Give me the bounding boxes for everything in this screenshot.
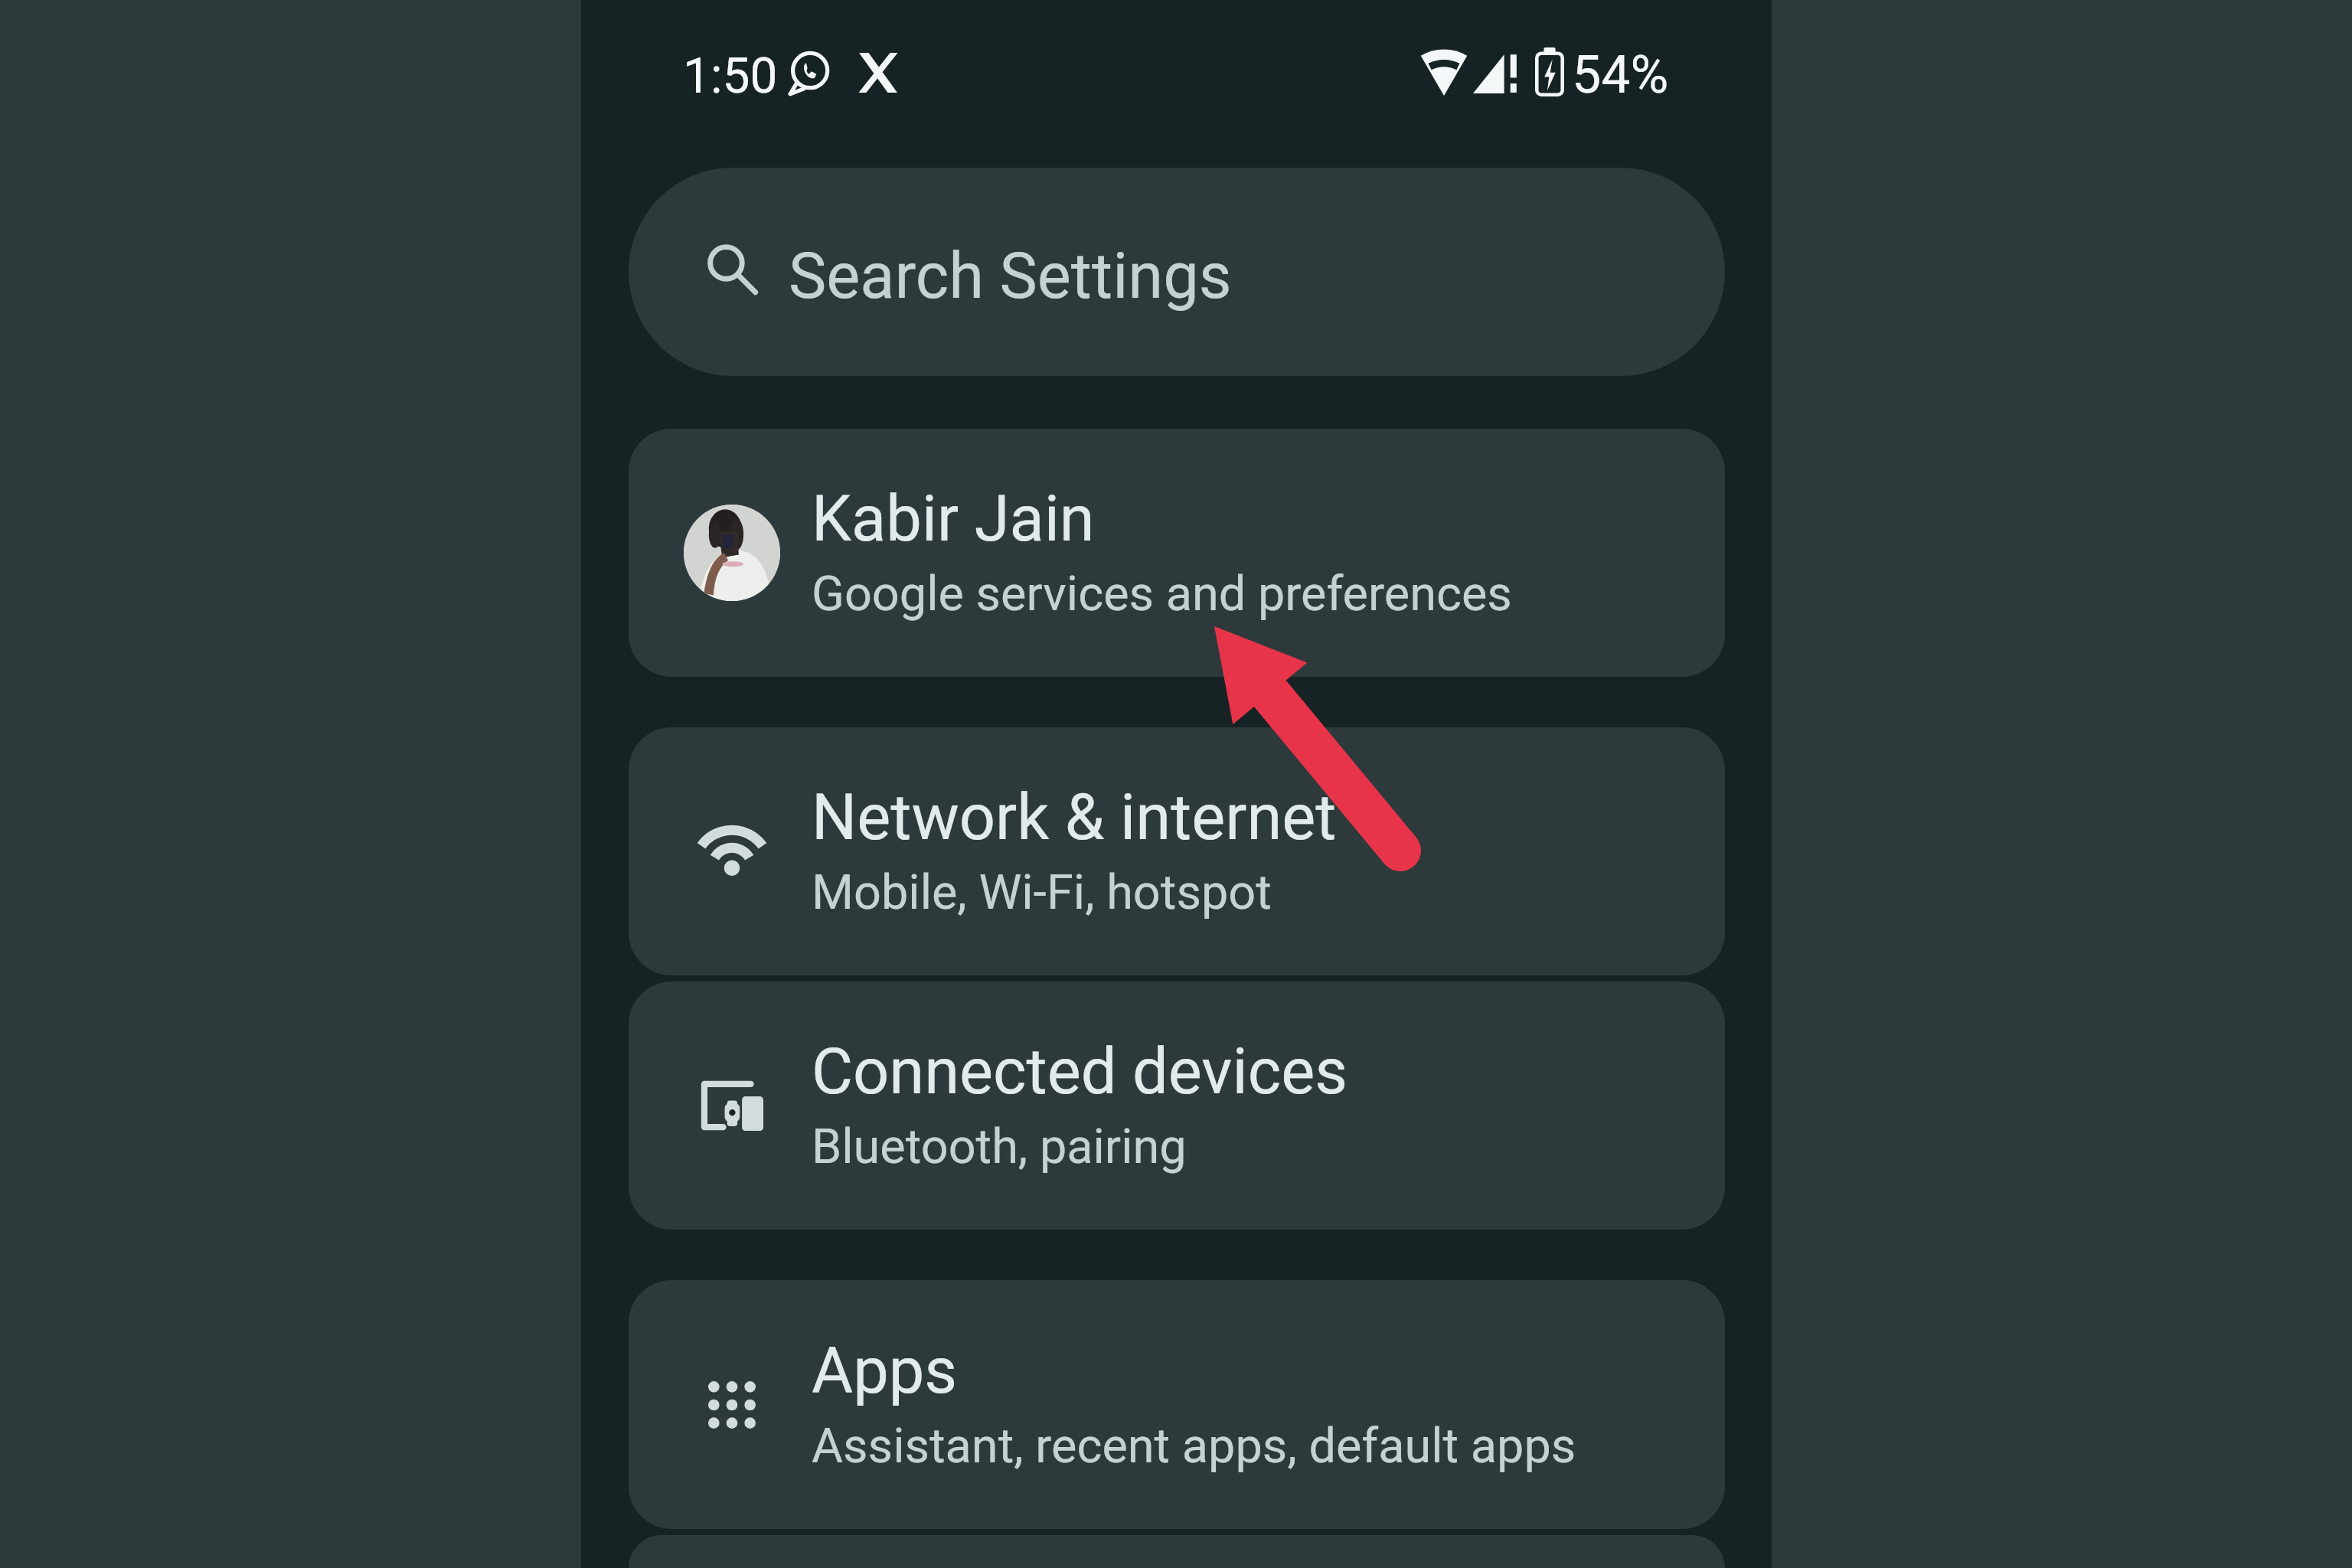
- staticText: Google services and preferences: [812, 566, 1512, 622]
- staticText: Mobile, Wi-Fi, hotspot: [812, 864, 1272, 921]
- staticText: Connected devices: [812, 1034, 1348, 1109]
- staticText: Assistant, recent apps, default apps: [812, 1418, 1576, 1475]
- button[interactable]: Network & internet: [629, 727, 1725, 975]
- staticText: 54%: [1572, 44, 1669, 106]
- button[interactable]: Connected devices: [629, 982, 1725, 1230]
- other: Mobile signal: [1473, 52, 1517, 93]
- staticText: Kabir Jain: [812, 482, 1095, 556]
- other: Wi-Fi signal: [1419, 52, 1469, 96]
- button[interactable]: Apps: [629, 1280, 1725, 1529]
- other: Battery charging: [1535, 47, 1564, 96]
- staticText: Network & internet: [812, 780, 1337, 854]
- button[interactable]: Search Settings: [629, 168, 1725, 376]
- other: WhatsApp notification: [787, 51, 831, 95]
- staticText: Apps: [812, 1334, 958, 1408]
- staticText: 1:50: [683, 47, 778, 105]
- button[interactable]: [629, 1535, 1725, 1568]
- button[interactable]: Kabir Jain: [629, 429, 1725, 677]
- other: X notification: [858, 53, 898, 93]
- staticText: Bluetooth, pairing: [812, 1119, 1187, 1175]
- staticText: Search Settings: [789, 239, 1232, 313]
